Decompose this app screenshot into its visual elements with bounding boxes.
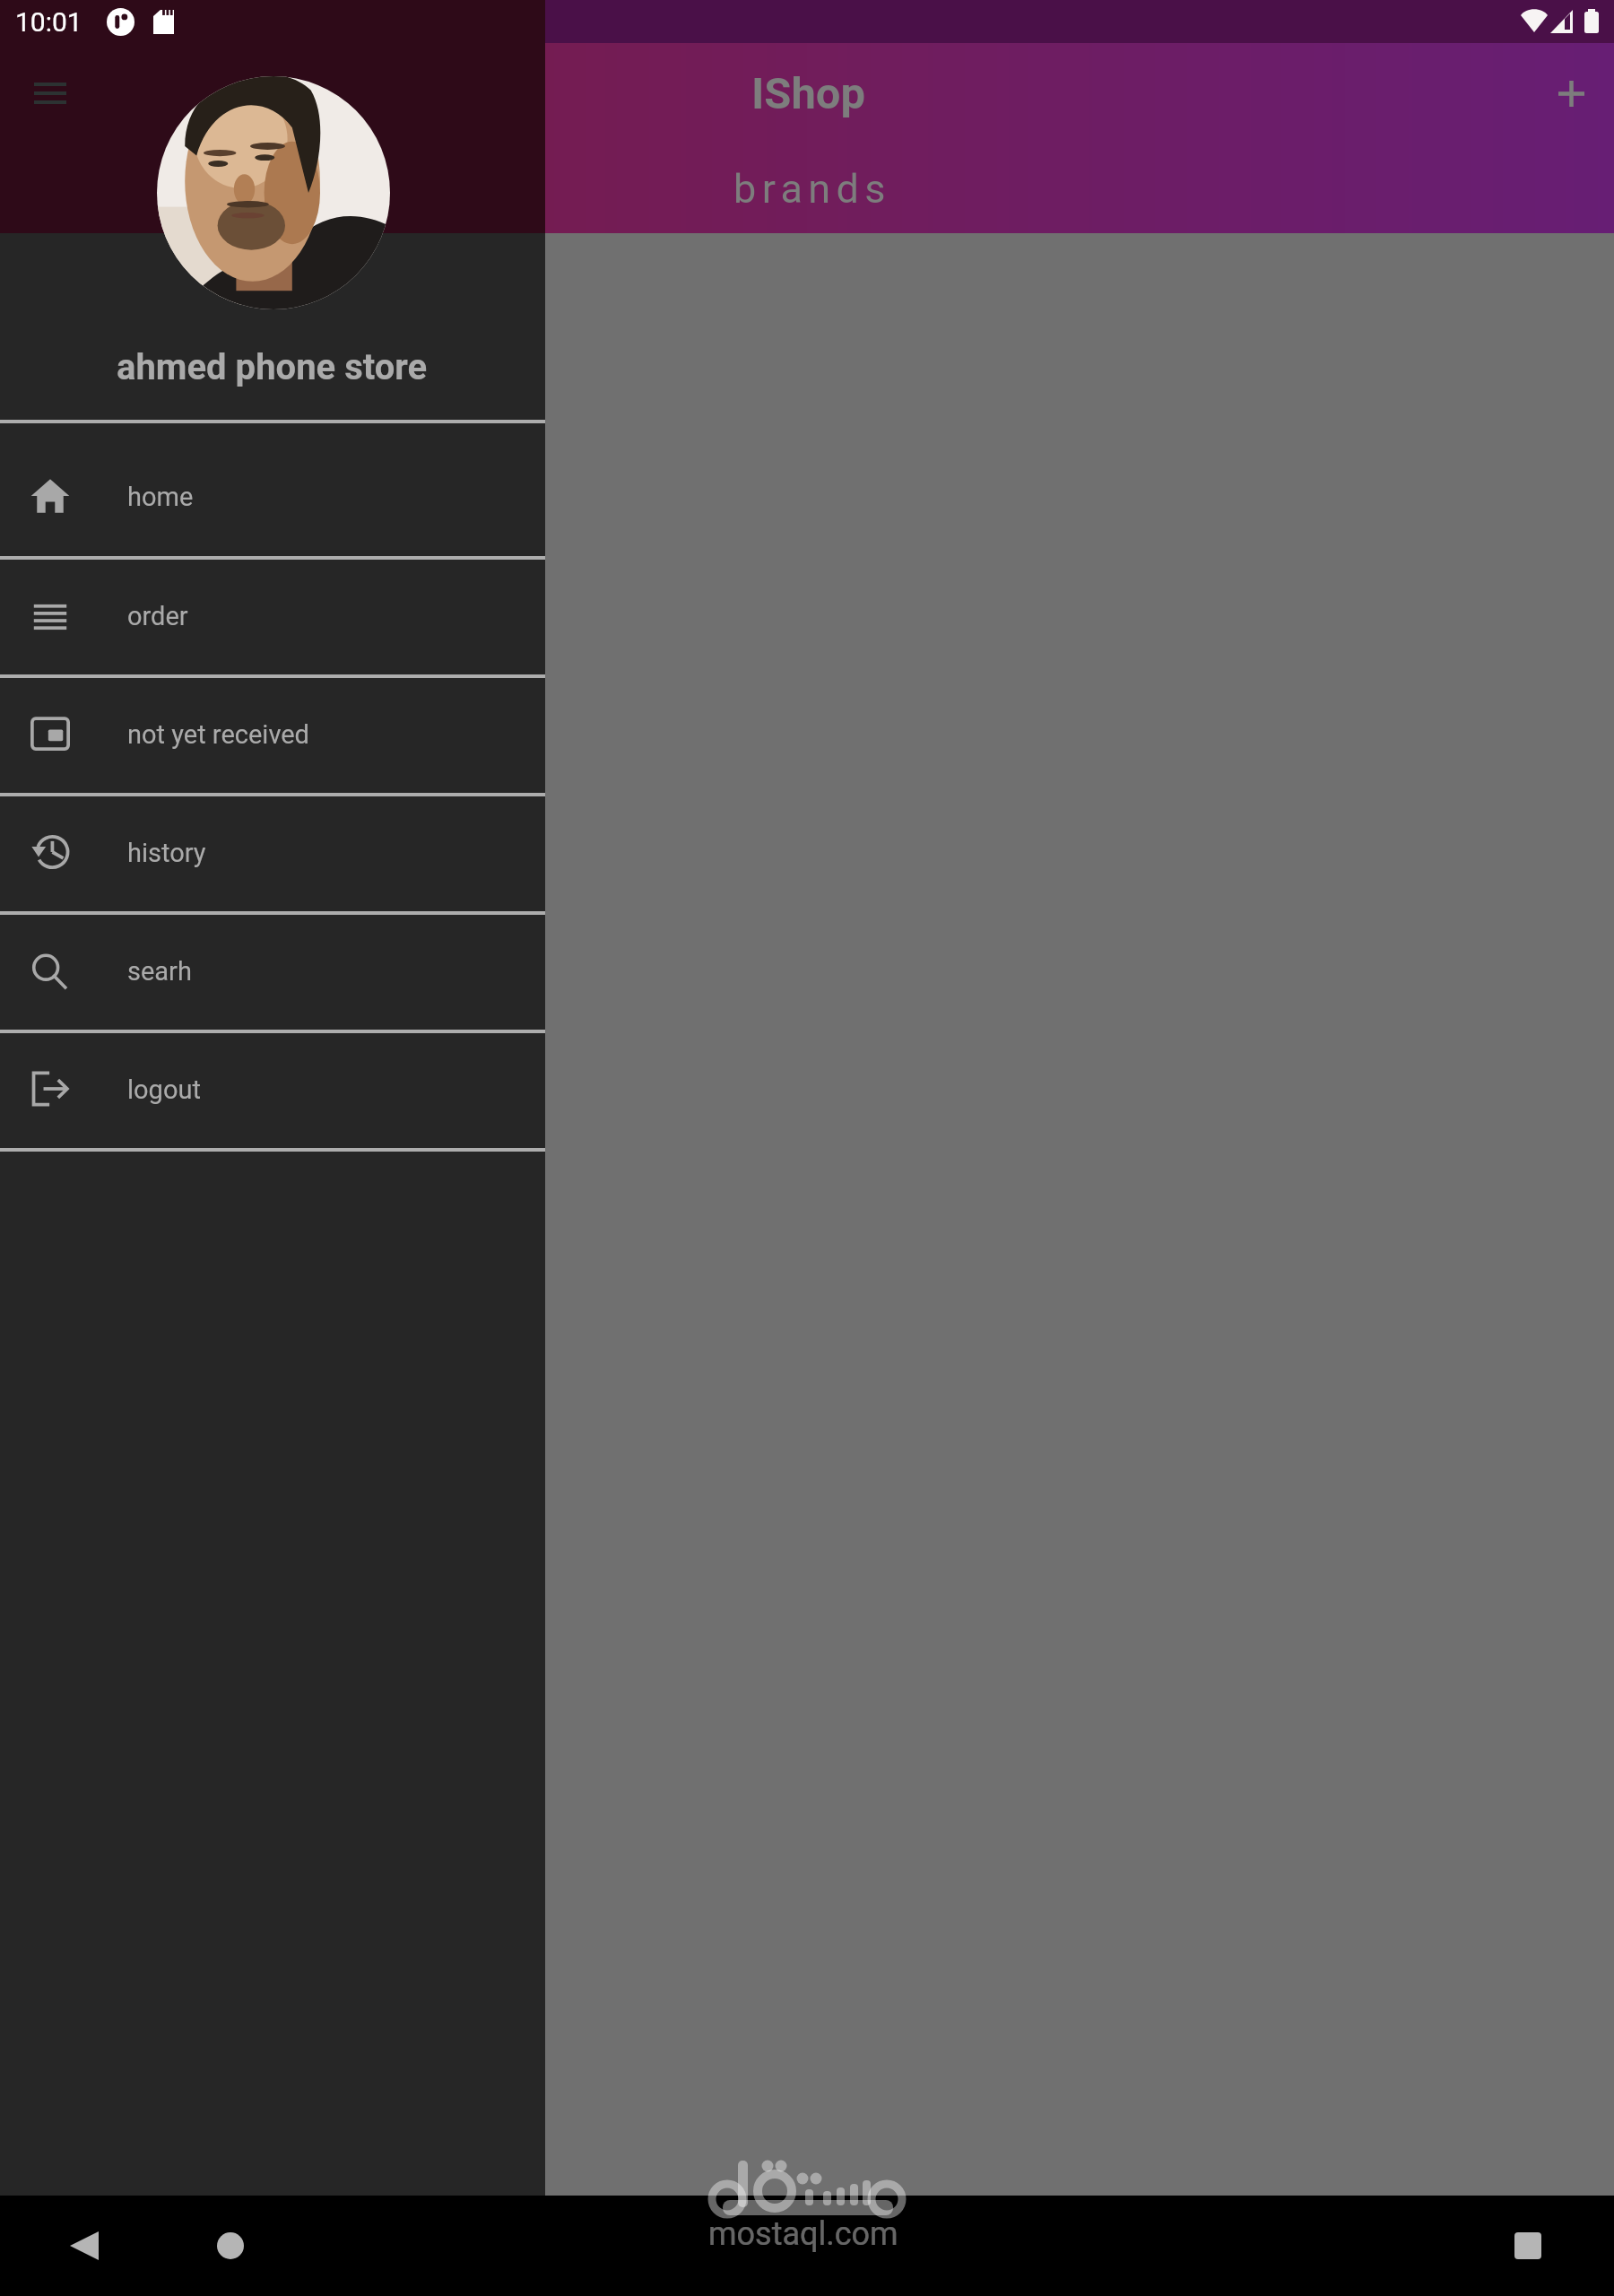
button[interactable]: logout [0,1033,545,1148]
button[interactable]: history [0,796,545,911]
staticText: not yet received [127,719,309,750]
staticText: logout [127,1074,201,1105]
staticText: history [127,838,206,868]
button[interactable]: home [0,423,545,556]
button[interactable]: Recent apps [1478,2196,1578,2296]
staticText: IShop [751,68,866,119]
staticText: order [127,601,188,631]
button[interactable]: not yet received [0,678,545,793]
button[interactable]: brands [0,143,1614,233]
button[interactable]: Menu [30,72,74,115]
staticText: mostaql.com [708,2215,898,2253]
button[interactable]: order [0,560,545,674]
button[interactable]: searh [0,915,545,1030]
staticText: ahmed phone store [117,346,428,388]
staticText: home [127,482,194,512]
staticText: searh [127,956,192,987]
button[interactable]: Add [1532,54,1610,133]
button[interactable]: Home [180,2196,281,2296]
staticText: brands [733,165,891,213]
button[interactable]: Back [34,2196,134,2296]
staticText: 10:01 [15,6,82,38]
